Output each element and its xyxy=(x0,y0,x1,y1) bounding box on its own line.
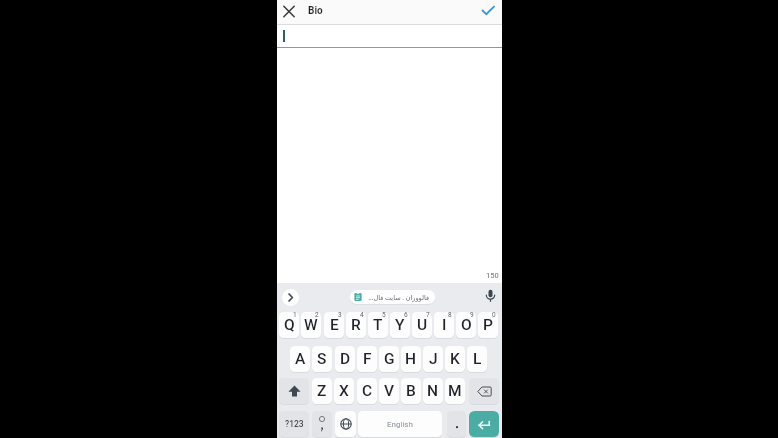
staticText: 8 xyxy=(448,311,452,319)
button[interactable] xyxy=(312,411,332,437)
button[interactable] xyxy=(477,1,499,21)
staticText: فالووران . سایت فال... xyxy=(368,293,429,302)
button[interactable]: N xyxy=(423,378,443,404)
button[interactable]: ?123 xyxy=(279,411,309,437)
staticText: 150 xyxy=(486,271,499,280)
button[interactable]: Y xyxy=(390,312,410,338)
staticText: 3 xyxy=(338,311,342,319)
staticText: 1 xyxy=(293,311,297,319)
staticText: H xyxy=(405,350,417,368)
staticText: C xyxy=(362,382,373,400)
button[interactable]: X xyxy=(334,378,354,404)
staticText: D xyxy=(340,350,351,368)
button[interactable]: E xyxy=(324,312,344,338)
button[interactable] xyxy=(279,378,309,404)
staticText: English xyxy=(387,420,413,429)
button[interactable]: S xyxy=(312,346,332,372)
button[interactable] xyxy=(447,411,466,437)
button[interactable]: G xyxy=(379,346,399,372)
button[interactable]: M xyxy=(445,378,465,404)
staticText: Q xyxy=(284,316,295,334)
button[interactable]: Z xyxy=(312,378,332,404)
staticText: R xyxy=(351,316,361,334)
staticText: M xyxy=(448,382,462,400)
staticText: ?123 xyxy=(285,419,304,429)
staticText: F xyxy=(363,350,372,368)
button[interactable]: F xyxy=(357,346,377,372)
staticText: E xyxy=(330,316,339,334)
staticText: N xyxy=(427,382,439,400)
button[interactable] xyxy=(282,289,299,306)
button[interactable] xyxy=(483,288,498,306)
button[interactable]: C xyxy=(357,378,377,404)
button[interactable]: H xyxy=(401,346,421,372)
staticText: 0 xyxy=(492,311,496,319)
staticText: L xyxy=(473,350,482,368)
button[interactable]: فالووران . سایت فال... xyxy=(350,290,435,304)
staticText: V xyxy=(384,382,395,400)
staticText: 4 xyxy=(360,311,364,319)
staticText: P xyxy=(483,316,493,334)
staticText: S xyxy=(317,350,327,368)
button[interactable]: L xyxy=(467,346,487,372)
staticText: U xyxy=(417,316,428,334)
staticText: I xyxy=(442,316,447,334)
button[interactable]: W xyxy=(301,312,321,338)
staticText: Bio xyxy=(308,5,323,17)
staticText: 2 xyxy=(315,311,319,319)
button[interactable]: Q xyxy=(279,312,299,338)
button[interactable] xyxy=(280,3,298,21)
button[interactable]: D xyxy=(335,346,355,372)
staticText: 6 xyxy=(404,311,408,319)
button[interactable]: R xyxy=(346,312,366,338)
staticText: 9 xyxy=(470,311,474,319)
button[interactable] xyxy=(335,411,356,437)
button[interactable]: T xyxy=(368,312,388,338)
staticText: B xyxy=(406,382,416,400)
button[interactable]: B xyxy=(401,378,421,404)
staticText: Y xyxy=(395,316,405,334)
button[interactable]: P xyxy=(478,312,498,338)
button[interactable]: V xyxy=(379,378,399,404)
button[interactable]: K xyxy=(445,346,465,372)
staticText: W xyxy=(304,316,318,334)
button[interactable]: I xyxy=(434,312,454,338)
staticText: G xyxy=(384,350,395,368)
button[interactable]: O xyxy=(456,312,476,338)
button[interactable]: A xyxy=(290,346,310,372)
staticText: X xyxy=(339,382,349,400)
staticText: J xyxy=(429,350,438,368)
button[interactable]: English xyxy=(358,411,442,437)
staticText: K xyxy=(450,350,460,368)
staticText: T xyxy=(373,316,383,334)
staticText: 5 xyxy=(382,311,386,319)
button[interactable] xyxy=(469,411,499,437)
staticText: A xyxy=(295,350,306,368)
staticText: 7 xyxy=(426,311,430,319)
button[interactable]: U xyxy=(412,312,432,338)
button[interactable] xyxy=(469,378,499,404)
staticText: O xyxy=(461,316,472,334)
staticText: Z xyxy=(317,382,327,400)
button[interactable]: J xyxy=(423,346,443,372)
